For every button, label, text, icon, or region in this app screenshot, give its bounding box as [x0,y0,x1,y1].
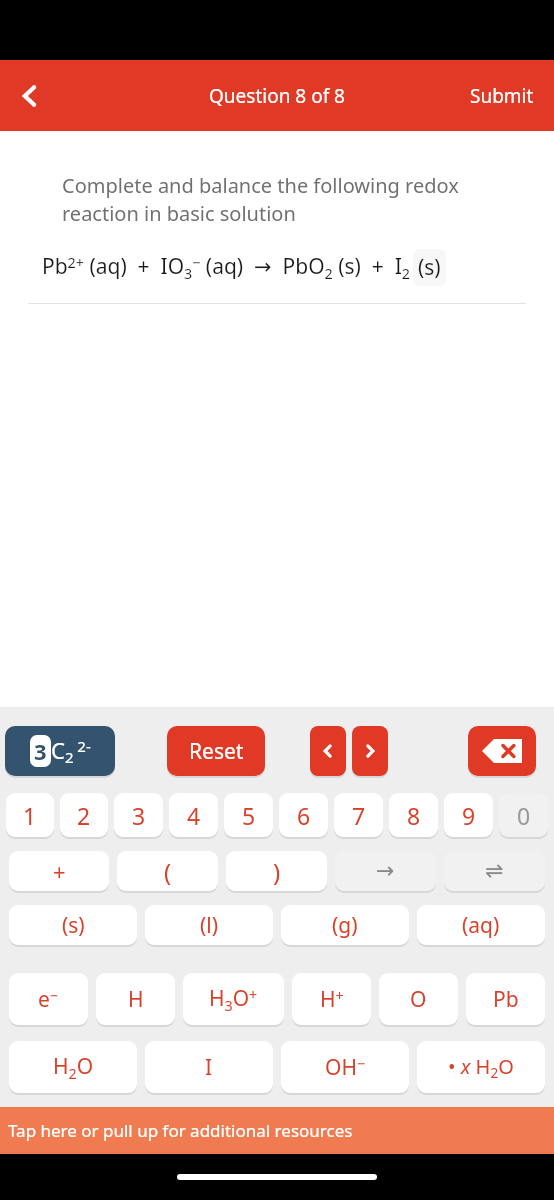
button[interactable]: ⇌ [444,851,545,893]
staticText: 7 [352,800,366,831]
button[interactable]: 3 [5,726,115,778]
button[interactable]: 4 [169,793,218,839]
staticText: (g) [332,911,358,940]
button[interactable]: Reset [167,726,265,778]
button[interactable]: 1 [6,793,54,839]
staticText: → [376,858,395,884]
staticText: • x H2O [448,1053,514,1082]
staticText: (s) [62,911,85,940]
button[interactable]: • x H2O [417,1041,545,1095]
staticText: Tap here or pull up for additional resou… [8,1119,353,1142]
staticText: 8 [407,800,421,831]
button[interactable]: H+ [292,973,371,1027]
button[interactable]: H3O+ [183,973,284,1027]
button[interactable]: (s) [418,253,441,282]
staticText: 3 [132,800,146,831]
staticText: 4 [187,800,201,831]
staticText: Reset [189,737,244,766]
button[interactable]: I [145,1041,273,1095]
button[interactable]: ) [226,851,327,893]
staticText: 6 [297,800,311,831]
button[interactable]: 5 [224,793,273,839]
staticText: (aq) [462,911,500,940]
button[interactable]: Back [0,66,60,126]
staticText: Pb2+ (aq) + IO3− (aq) → PbO2 (s) + I2 [42,252,411,283]
staticText: 3 [34,736,47,766]
staticText: Submit [470,83,534,109]
staticText: ⇌ [485,858,504,884]
staticText: H+ [320,985,344,1014]
staticText: 5 [242,800,256,831]
staticText: I [205,1053,213,1082]
staticText: Question 8 of 8 [209,83,345,109]
staticText: O [410,985,427,1014]
staticText: H2O [53,1052,94,1083]
button[interactable]: + [9,851,109,893]
staticText: 1 [23,800,37,831]
button[interactable]: 3 [114,793,163,839]
staticText: Complete and balance the following redox… [62,172,514,227]
staticText: + [53,856,66,886]
staticText: 9 [462,800,476,831]
staticText: ( [164,855,172,888]
staticText: Pb [493,985,519,1014]
button[interactable]: Pb [466,973,545,1027]
button[interactable]: (l) [145,905,273,947]
button[interactable]: H2O [9,1041,137,1095]
button[interactable]: → [335,851,436,893]
button[interactable]: 0 [499,793,548,839]
staticText: 2 [77,800,91,831]
button[interactable]: Submit [470,60,534,131]
button[interactable]: O [379,973,458,1027]
button[interactable]: 6 [279,793,328,839]
staticText: H [128,985,144,1014]
staticText: H3O+ [209,984,258,1015]
staticText: C2 2- [51,735,91,767]
button[interactable]: 7 [334,793,383,839]
staticText: ) [273,855,281,888]
button[interactable]: Previous [310,726,346,778]
button[interactable]: OH− [281,1041,409,1095]
button[interactable]: Backspace [468,726,536,778]
button[interactable]: (aq) [417,905,545,947]
button[interactable]: Tap here or pull up for additional resou… [0,1107,554,1154]
button[interactable]: 2 [60,793,108,839]
button[interactable]: e− [9,973,88,1027]
button[interactable]: 9 [444,793,493,839]
button[interactable]: 8 [389,793,438,839]
staticText: 0 [517,800,531,831]
staticText: OH− [325,1053,366,1082]
button[interactable]: ( [117,851,218,893]
button[interactable]: (s) [9,905,137,947]
button[interactable]: (g) [281,905,409,947]
staticText: (l) [200,911,219,940]
button[interactable]: H [96,973,175,1027]
staticText: e− [38,985,59,1014]
staticText: (s) [418,253,441,282]
button[interactable]: Next [352,726,388,778]
